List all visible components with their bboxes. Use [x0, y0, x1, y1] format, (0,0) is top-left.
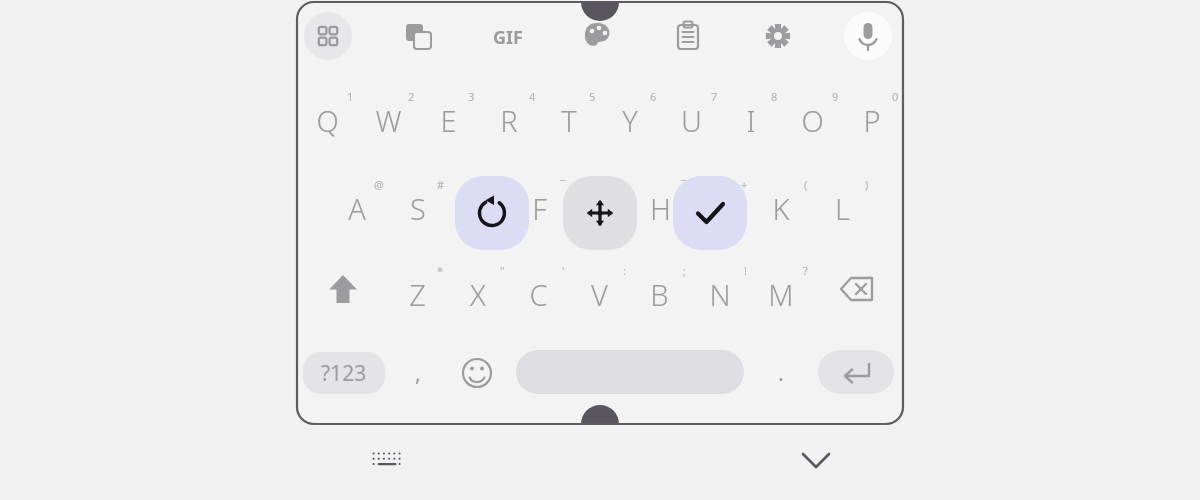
button[interactable]: ": [449, 260, 507, 318]
button[interactable]: Emoji: [455, 352, 499, 394]
button[interactable]: !: [691, 260, 749, 318]
staticText: X: [470, 275, 486, 314]
button[interactable]: ;: [630, 260, 688, 318]
staticText: M: [768, 275, 794, 314]
button[interactable]: Backspace: [827, 263, 887, 315]
button[interactable]: 8: [722, 86, 780, 144]
staticText: :: [623, 263, 626, 278]
staticText: J: [717, 189, 725, 228]
button[interactable]: Clipboard: [660, 8, 716, 64]
button[interactable]: Shift: [315, 263, 371, 315]
staticText: 2: [408, 89, 415, 104]
staticText: E: [440, 101, 457, 140]
button[interactable]: +: [692, 174, 750, 232]
button[interactable]: .: [765, 350, 797, 394]
button[interactable]: ?123: [303, 352, 385, 394]
button[interactable]: :: [570, 260, 628, 318]
button[interactable]: #: [389, 174, 447, 232]
button[interactable]: ): [813, 174, 871, 232]
button[interactable]: 6: [601, 86, 659, 144]
staticText: C: [529, 275, 548, 314]
staticText: Q: [316, 101, 339, 140]
staticText: T: [561, 101, 577, 140]
staticText: I: [746, 101, 756, 140]
button[interactable]: 2: [359, 86, 417, 144]
button[interactable]: 0: [843, 86, 901, 144]
staticText: A: [348, 189, 366, 228]
button[interactable]: (: [752, 174, 810, 232]
staticText: H: [650, 189, 671, 228]
staticText: 4: [529, 89, 536, 104]
button[interactable]: Voice input: [840, 8, 896, 64]
button[interactable]: Space: [516, 350, 744, 394]
staticText: 0: [892, 89, 899, 104]
staticText: N: [709, 275, 731, 314]
button[interactable]: Confirm: [673, 176, 747, 250]
staticText: 8: [771, 89, 778, 104]
staticText: 3: [468, 89, 475, 104]
staticText: Z: [409, 275, 426, 314]
staticText: B: [650, 275, 669, 314]
staticText: *: [437, 263, 444, 278]
staticText: ¯: [681, 177, 687, 192]
staticText: ': [562, 263, 565, 278]
staticText: G: [589, 189, 610, 228]
button[interactable]: *: [388, 260, 446, 318]
button[interactable]: ^: [449, 174, 507, 232]
staticText: Y: [622, 101, 638, 140]
staticText: @: [374, 177, 384, 192]
button[interactable]: ¯: [631, 174, 689, 232]
button[interactable]: Move keyboard: [563, 176, 637, 250]
staticText: ;: [683, 263, 686, 278]
staticText: +: [741, 177, 748, 192]
staticText: ?: [803, 263, 808, 278]
staticText: ¯: [560, 177, 566, 192]
button[interactable]: Hide keyboard: [791, 442, 841, 478]
staticText: 1: [347, 89, 354, 104]
button[interactable]: 5: [540, 86, 598, 144]
staticText: &: [617, 177, 626, 192]
staticText: O: [801, 101, 824, 140]
staticText: #: [437, 177, 445, 192]
button[interactable]: Stickers: [570, 8, 626, 64]
staticText: V: [591, 275, 608, 314]
button[interactable]: Keyboard modes: [300, 8, 356, 64]
button[interactable]: ?: [752, 260, 810, 318]
staticText: .: [778, 357, 784, 387]
staticText: !: [744, 263, 747, 278]
button[interactable]: ': [509, 260, 567, 318]
staticText: ,: [415, 357, 421, 387]
button[interactable]: @: [328, 174, 386, 232]
staticText: (: [804, 177, 808, 192]
staticText: F: [532, 189, 547, 228]
staticText: U: [681, 101, 702, 140]
button[interactable]: 9: [783, 86, 841, 144]
staticText: L: [835, 189, 850, 228]
button[interactable]: 4: [480, 86, 538, 144]
button[interactable]: &: [570, 174, 628, 232]
staticText: S: [410, 189, 426, 228]
button[interactable]: Translate: [390, 8, 446, 64]
button[interactable]: Enter: [818, 350, 894, 394]
button[interactable]: Change keyboard: [360, 443, 410, 477]
staticText: ): [865, 177, 869, 192]
button[interactable]: Settings: [750, 8, 806, 64]
button[interactable]: 7: [662, 86, 720, 144]
button[interactable]: 3: [419, 86, 477, 144]
staticText: R: [500, 101, 518, 140]
button[interactable]: GIF: [482, 25, 534, 47]
staticText: D: [468, 189, 489, 228]
staticText: 6: [650, 89, 657, 104]
staticText: 7: [711, 89, 718, 104]
staticText: 5: [589, 89, 596, 104]
staticText: 9: [832, 89, 839, 104]
button[interactable]: 1: [298, 86, 356, 144]
button[interactable]: ,: [400, 350, 436, 394]
button[interactable]: ¯: [510, 174, 568, 232]
staticText: ": [500, 263, 505, 278]
staticText: ?123: [321, 359, 367, 388]
staticText: P: [863, 101, 881, 140]
button[interactable]: Reset keyboard size: [455, 176, 529, 250]
staticText: W: [375, 101, 402, 140]
